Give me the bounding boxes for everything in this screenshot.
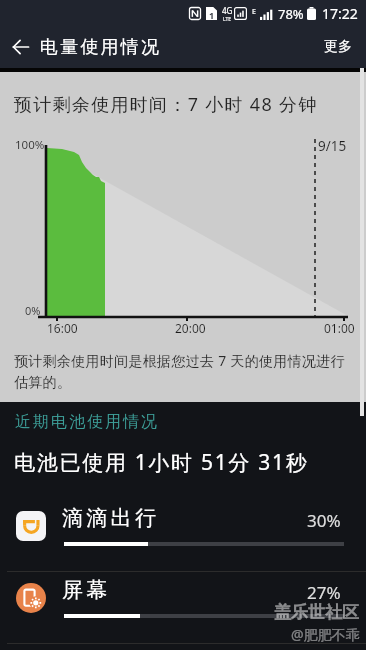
staticText: 0% bbox=[25, 303, 41, 318]
staticText: @肥肥不乖 bbox=[291, 625, 360, 644]
staticText: 电量使用情况 bbox=[40, 36, 162, 59]
staticText: 16:00 bbox=[47, 320, 78, 336]
staticText: 20:00 bbox=[175, 320, 206, 336]
staticText: 近期电池使用情况 bbox=[14, 412, 158, 432]
staticText: 盖乐世社区 bbox=[274, 602, 359, 623]
staticText: 滴滴出行 bbox=[62, 505, 160, 531]
staticText: 预计剩余使用时间是根据您过去 7 天的使用情况进行估算的。 bbox=[14, 351, 355, 391]
staticText: 1 bbox=[209, 9, 215, 21]
staticText: 预计剩余使用时间：7 小时 48 分钟 bbox=[14, 92, 318, 117]
staticText: 更多 bbox=[324, 38, 352, 56]
button[interactable]: 滴滴出行 bbox=[0, 500, 366, 572]
staticText: 电池已使用 1小时 51分 31秒 bbox=[14, 448, 309, 477]
staticText: 17:22 bbox=[322, 4, 358, 23]
staticText: E bbox=[252, 7, 256, 17]
staticText: 78% bbox=[278, 5, 304, 23]
button[interactable]: Back bbox=[0, 26, 42, 68]
button[interactable]: 更多 bbox=[310, 28, 366, 66]
staticText: 9/15 bbox=[318, 137, 347, 155]
staticText: 4G bbox=[222, 5, 233, 16]
button[interactable]: 屏幕 bbox=[0, 572, 366, 644]
staticText: 100% bbox=[15, 137, 45, 153]
staticText: 30% bbox=[307, 509, 341, 532]
staticText: 27% bbox=[307, 581, 341, 604]
staticText: LTE bbox=[223, 16, 232, 23]
staticText: 屏幕 bbox=[62, 577, 111, 603]
staticText: 01:00 bbox=[324, 320, 355, 336]
